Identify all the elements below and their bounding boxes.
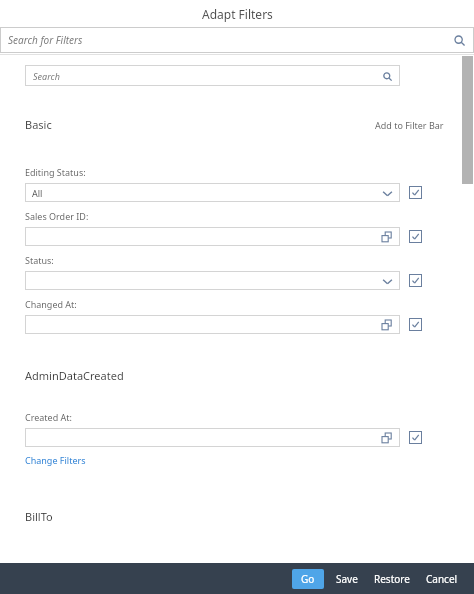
staticText: Editing Status: <box>25 166 86 178</box>
button[interactable]: Toggle filter visibility <box>409 318 422 331</box>
button[interactable]: Save <box>330 569 364 589</box>
button[interactable]: Toggle filter visibility <box>409 431 422 444</box>
staticText: Changed At: <box>25 298 77 310</box>
staticText: Cancel <box>426 572 458 586</box>
button[interactable]: Add to Filter Bar <box>375 119 444 131</box>
staticText: Status: <box>25 254 54 266</box>
button[interactable]: Toggle filter visibility <box>409 274 422 287</box>
button[interactable]: Search for Filters <box>0 27 474 53</box>
other: Search <box>452 33 466 47</box>
button[interactable]: Change Filters <box>25 454 86 466</box>
staticText: Save <box>336 572 358 586</box>
button[interactable]: Value help <box>25 428 400 447</box>
other: Open dropdown <box>380 274 394 288</box>
button[interactable]: Go <box>292 569 324 589</box>
staticText: All <box>32 187 43 199</box>
staticText: Sales Order ID: <box>25 210 89 222</box>
other: Search <box>381 70 393 82</box>
button[interactable]: Cancel <box>420 569 464 589</box>
button[interactable]: Restore <box>368 569 416 589</box>
button[interactable]: Value help <box>25 227 400 246</box>
staticText: Add to Filter Bar <box>375 119 444 131</box>
other: Value help <box>380 318 394 332</box>
other: Value help <box>380 431 394 445</box>
other: Open dropdown <box>380 186 394 200</box>
other: Value help <box>380 230 394 244</box>
staticText: BillTo <box>25 509 53 524</box>
staticText: Go <box>301 572 315 586</box>
staticText: Created At: <box>25 411 72 423</box>
staticText: Change Filters <box>25 454 86 466</box>
button[interactable]: Value help <box>25 315 400 334</box>
button[interactable]: Search <box>25 65 400 86</box>
button[interactable]: Open dropdown <box>25 271 400 290</box>
staticText: Search <box>33 70 60 82</box>
button[interactable]: Toggle filter visibility <box>409 186 422 199</box>
button[interactable]: Toggle filter visibility <box>409 230 422 243</box>
staticText: Restore <box>374 572 410 586</box>
staticText: Adapt Filters <box>202 6 273 22</box>
button[interactable]: All <box>25 183 400 202</box>
staticText: Search for Filters <box>8 33 83 47</box>
staticText: Basic <box>25 117 52 132</box>
staticText: AdminDataCreated <box>25 368 124 383</box>
